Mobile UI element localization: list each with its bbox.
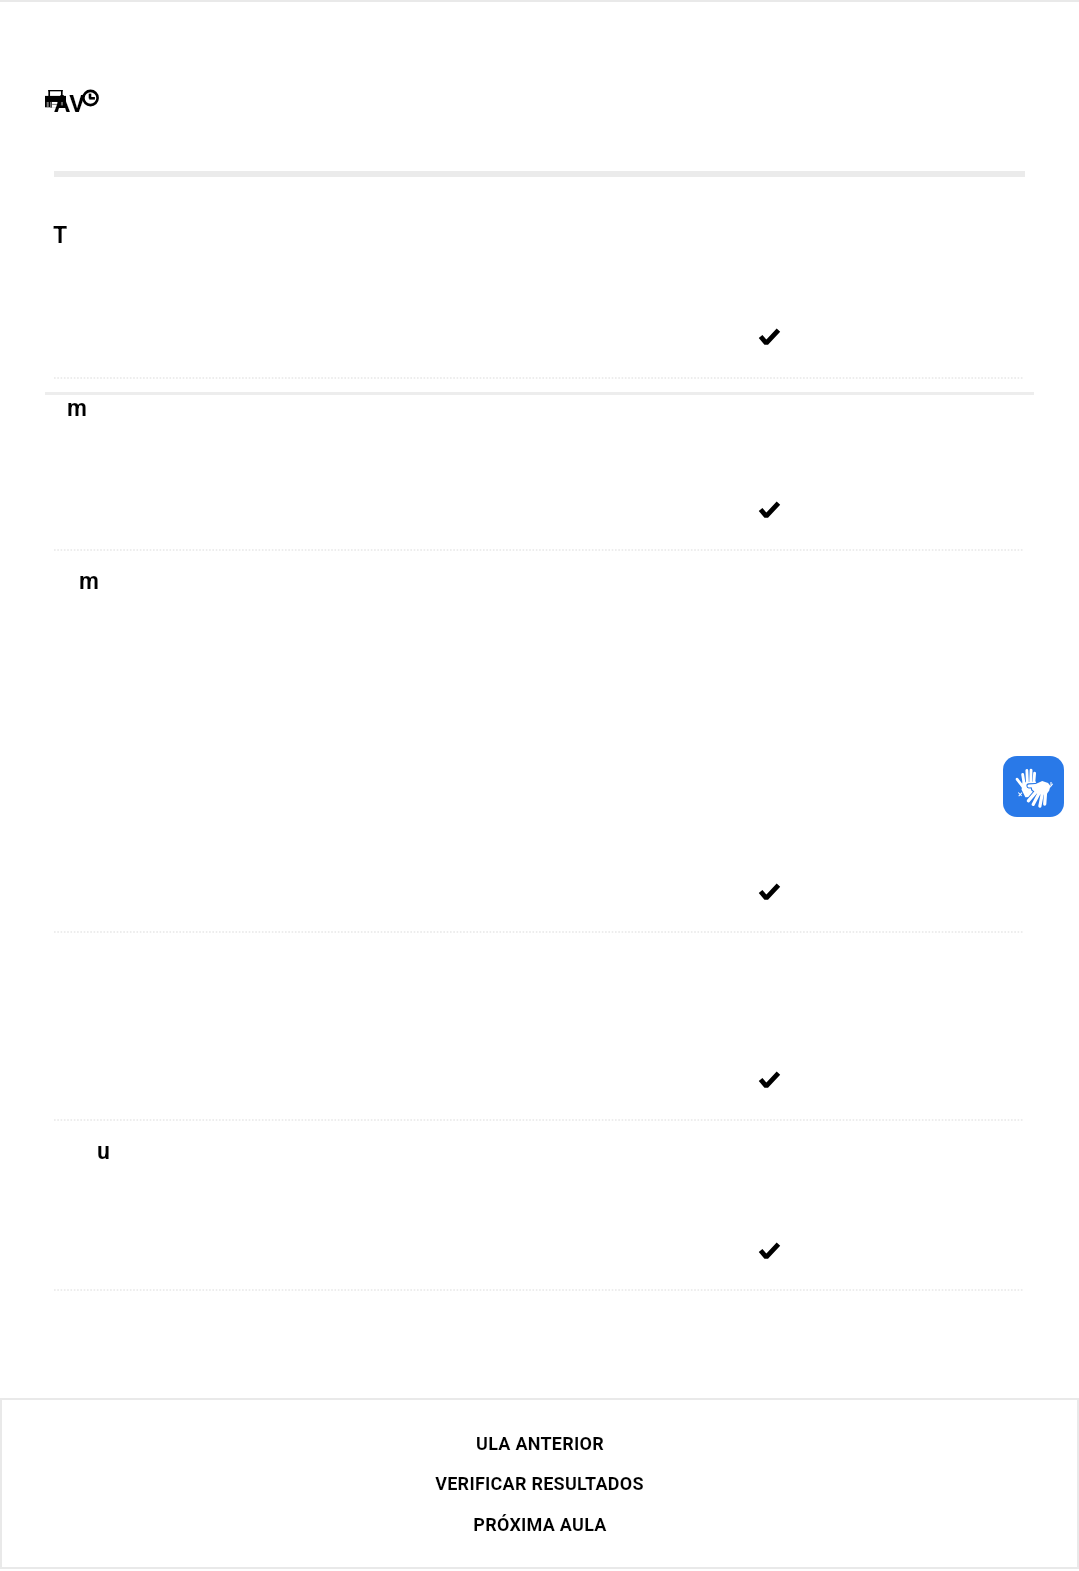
button[interactable]: m [45, 395, 1034, 548]
button[interactable]: Resposta correta [45, 932, 1034, 1118]
button[interactable]: u [45, 1120, 1034, 1288]
button[interactable]: T [45, 190, 1034, 376]
staticText: PRÓXIMA AULA [473, 1514, 607, 1535]
staticText: AV [54, 90, 85, 118]
other: Resposta correta [760, 1072, 779, 1088]
staticText: ULA ANTERIOR [476, 1433, 604, 1454]
other: Resposta correta [760, 329, 779, 345]
staticText: u [97, 1138, 110, 1165]
staticText: VERIFICAR RESULTADOS [435, 1473, 644, 1494]
button[interactable]: Imprimir aula e histórico [42, 82, 104, 116]
button[interactable]: PRÓXIMA AULA [2, 1504, 1077, 1544]
other: Resposta correta [760, 502, 779, 518]
other: Resposta correta [760, 884, 779, 900]
button[interactable]: Acessibilidade em Libras [1003, 756, 1064, 817]
staticText: T [53, 222, 68, 249]
button[interactable]: m [45, 550, 1034, 930]
other: Resposta correta [760, 1243, 779, 1259]
button[interactable]: VERIFICAR RESULTADOS [2, 1463, 1077, 1503]
staticText: m [67, 395, 87, 422]
staticText: m [79, 568, 99, 595]
button[interactable]: ULA ANTERIOR [2, 1423, 1077, 1463]
